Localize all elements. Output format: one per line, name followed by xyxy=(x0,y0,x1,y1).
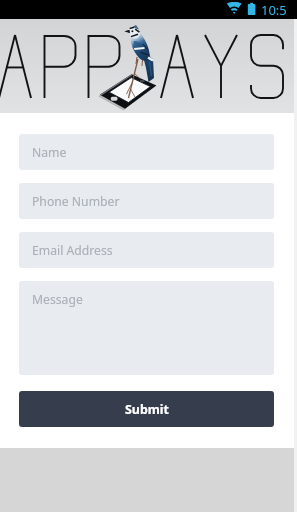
staticText: Submit xyxy=(125,401,169,418)
staticText: Message xyxy=(32,291,83,308)
button[interactable]: Message xyxy=(19,281,274,375)
staticText: Email Address xyxy=(32,242,113,259)
staticText: Phone Number xyxy=(32,193,120,210)
button[interactable]: Name xyxy=(19,134,274,170)
staticText: 10:5 xyxy=(261,1,287,19)
staticText: Name xyxy=(32,144,67,161)
button[interactable]: Submit xyxy=(19,391,274,427)
button[interactable]: Phone Number xyxy=(19,183,274,219)
button[interactable]: Email Address xyxy=(19,232,274,268)
